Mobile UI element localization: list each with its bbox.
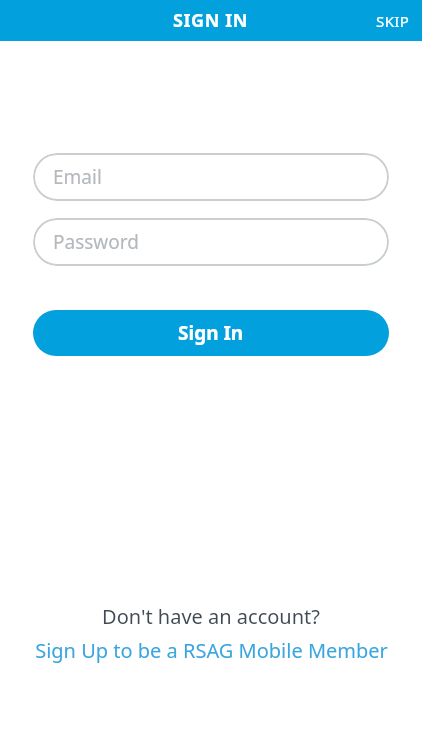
staticText: Password	[53, 229, 139, 255]
button[interactable]: Sign Up to be a RSAG Mobile Member	[0, 635, 422, 666]
staticText: Sign Up to be a RSAG Mobile Member	[35, 637, 388, 664]
staticText: SIGN IN	[173, 8, 249, 33]
button[interactable]: SKIP	[364, 5, 422, 37]
button[interactable]: Sign In	[33, 310, 389, 356]
button[interactable]: Password field	[33, 218, 389, 266]
staticText: Don't have an account?	[102, 603, 320, 630]
staticText: Sign In	[178, 320, 244, 346]
staticText: Email	[53, 164, 102, 190]
staticText: SKIP	[376, 11, 410, 31]
button[interactable]: Email field	[33, 153, 389, 201]
